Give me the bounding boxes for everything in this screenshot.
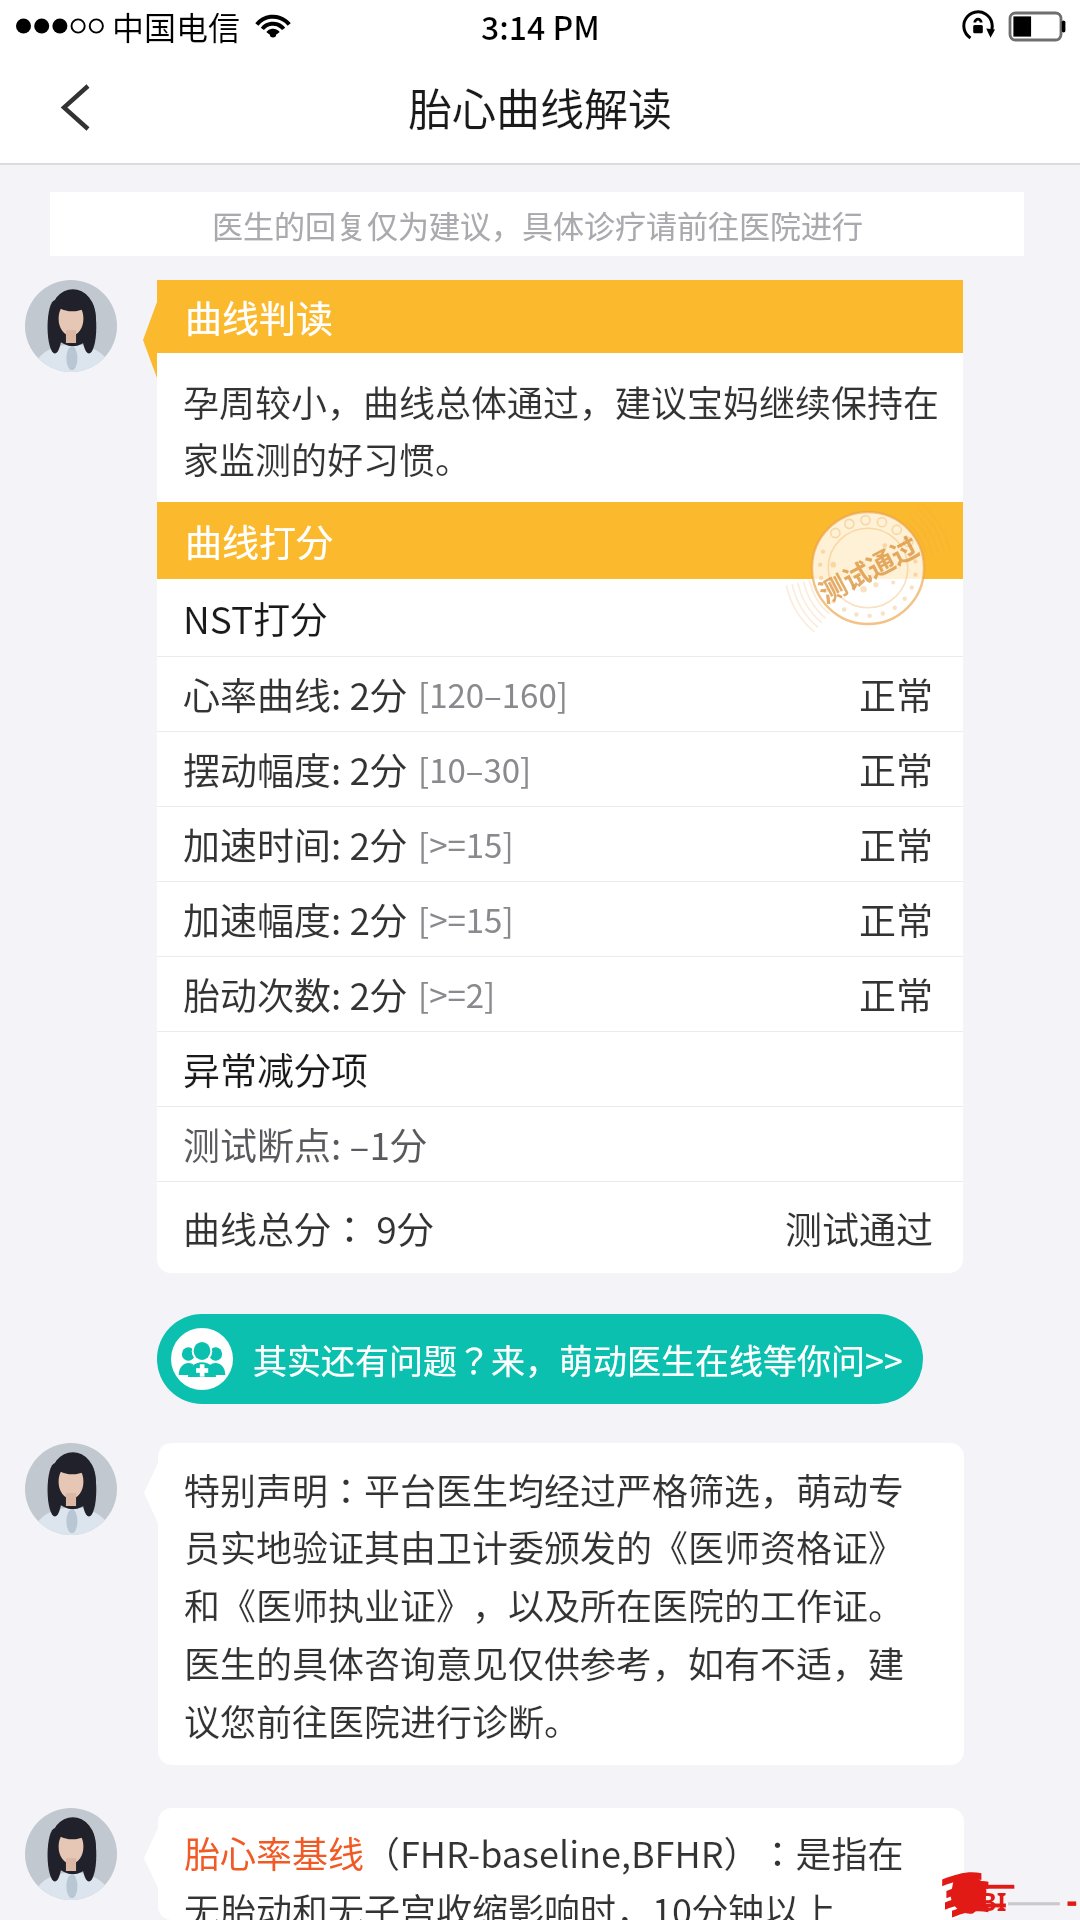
staticText: 曲线判读 [185,290,333,344]
staticText: [>=2] [418,970,496,1018]
staticText: 心率曲线: 2分 [183,667,408,721]
staticText: 测试通过 [785,1201,933,1255]
staticText: CBI [964,1884,1007,1918]
staticText: 3:14 PM [481,3,600,49]
staticText: 曲线总分： 9分 [183,1201,434,1255]
staticText: 测试通过 [811,526,925,611]
staticText: 医生的回复仅为建议，具体诊疗请前往医院进行 [212,202,863,247]
staticText: 胎心率基线（FHR-baseline,BFHR）：是指在无胎动和无子宫收缩影响时… [184,1826,914,1920]
staticText: 正常 [859,967,933,1021]
staticText: 测试断点: –1分 [183,1117,427,1171]
staticText: 其实还有问题？来，萌动医生在线等你问>> [253,1335,903,1384]
staticText: 正常 [859,892,933,946]
staticText: [10–30] [418,745,532,793]
staticText: NST打分 [183,591,328,645]
button[interactable]: Back [0,55,150,165]
staticText: 摆动幅度: 2分 [183,742,408,796]
staticText: 胎动次数: 2分 [183,967,408,1021]
staticText: 中国电信 [112,3,241,49]
staticText: 胎心曲线解读 [408,75,672,139]
staticText: [>=15] [418,820,514,868]
staticText: 特别声明：平台医生均经过严格筛选，萌动专员实地验证其由卫计委颁发的《医师资格证》… [184,1463,916,1747]
staticText: 曲线打分 [185,514,333,568]
staticText: 正常 [859,817,933,871]
staticText: 正常 [859,667,933,721]
staticText: [>=15] [418,895,514,943]
staticText: 异常减分项 [183,1042,368,1096]
staticText: [120–160] [418,670,568,718]
staticText: 孕周较小，曲线总体通过，建议宝妈继续保持在家监测的好习惯。 [183,375,955,485]
staticText: 加速时间: 2分 [183,817,408,871]
staticText: 正常 [859,742,933,796]
staticText: 加速幅度: 2分 [183,892,408,946]
button[interactable]: 其实还有问题？来，萌动医生在线等你问>> [157,1314,923,1404]
